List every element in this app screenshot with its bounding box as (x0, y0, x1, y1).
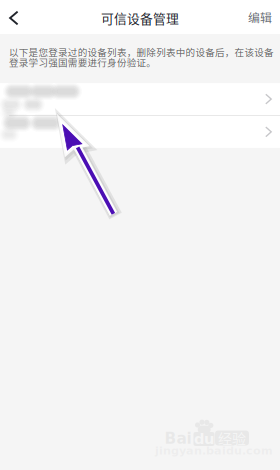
staticText: 以下是您登录过的设备列表，删除列表中的设备后，在该设备 登录学习强国需要进行身份… (9, 45, 274, 69)
button[interactable]: Back (0, 0, 35, 34)
staticText: du (194, 430, 214, 448)
staticText: 经验 (218, 428, 246, 448)
button[interactable]: Trusted device (0, 83, 280, 115)
button[interactable]: 编辑 (248, 0, 280, 34)
staticText: jingyan.baidu.com (155, 444, 273, 457)
staticText: 编辑 (248, 8, 272, 26)
button[interactable]: Trusted device (0, 116, 280, 148)
staticText: Bai (164, 430, 191, 447)
staticText: 可信设备管理 (101, 9, 179, 27)
